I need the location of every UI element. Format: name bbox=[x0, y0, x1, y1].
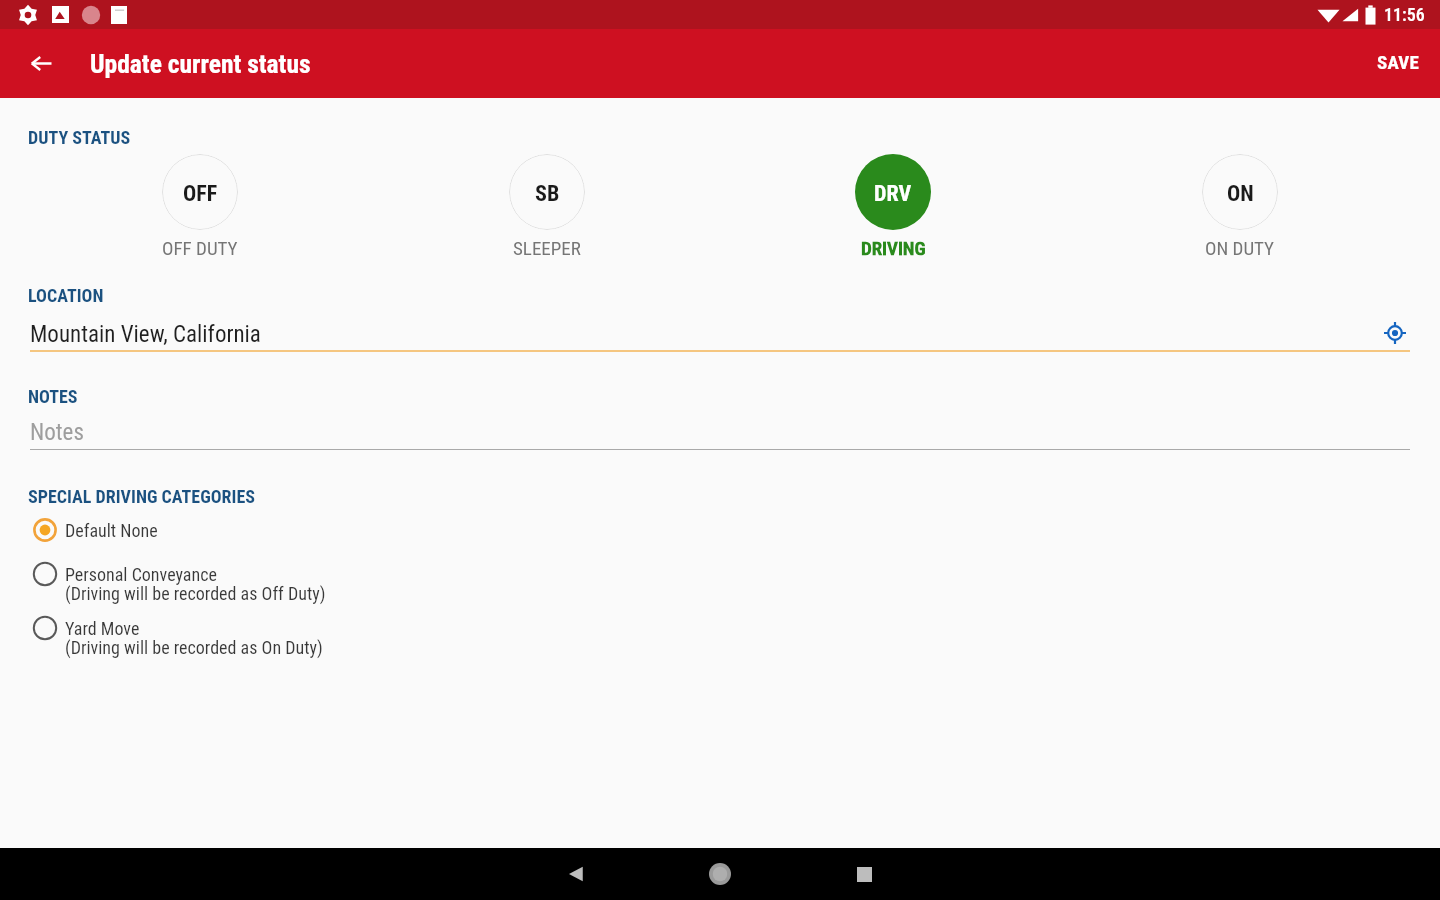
staticText: Mountain View, California bbox=[30, 321, 261, 348]
staticText: Yard Move bbox=[65, 618, 140, 639]
staticText: 11:56 bbox=[1384, 4, 1425, 25]
staticText: OFF DUTY bbox=[162, 237, 238, 259]
staticText: SAVE bbox=[1377, 51, 1420, 73]
button[interactable]: Home bbox=[696, 850, 744, 898]
staticText: SPECIAL DRIVING CATEGORIES bbox=[28, 486, 255, 507]
button[interactable]: OFF bbox=[140, 154, 260, 259]
staticText: DRV bbox=[874, 181, 912, 207]
button[interactable]: SB bbox=[487, 154, 607, 259]
staticText: NOTES bbox=[28, 386, 78, 407]
staticText: ON bbox=[1227, 181, 1254, 207]
staticText: ON DUTY bbox=[1205, 237, 1275, 259]
button[interactable]: Default None bbox=[0, 515, 1440, 545]
button[interactable]: Recent apps bbox=[840, 850, 888, 898]
staticText: DRIVING bbox=[861, 237, 926, 259]
button[interactable]: DRV bbox=[833, 154, 953, 259]
staticText: Notes bbox=[30, 419, 84, 446]
staticText: (Driving will be recorded as On Duty) bbox=[65, 637, 323, 658]
staticText: (Driving will be recorded as Off Duty) bbox=[65, 583, 326, 604]
staticText: SLEEPER bbox=[513, 237, 581, 259]
staticText: SB bbox=[535, 181, 560, 207]
button[interactable]: Yard Move bbox=[0, 613, 1440, 655]
button[interactable]: ON bbox=[1180, 154, 1300, 259]
staticText: DUTY STATUS bbox=[28, 127, 131, 148]
button[interactable]: Back bbox=[17, 39, 66, 88]
button[interactable]: Personal Conveyance bbox=[0, 559, 1440, 601]
staticText: Default None bbox=[65, 520, 158, 541]
staticText: Update current status bbox=[90, 49, 311, 79]
staticText: LOCATION bbox=[28, 285, 104, 306]
staticText: Personal Conveyance bbox=[65, 564, 217, 585]
button[interactable]: SAVE bbox=[1365, 41, 1432, 83]
staticText: OFF bbox=[183, 181, 218, 207]
button[interactable]: Back bbox=[552, 850, 600, 898]
button[interactable]: Use my location bbox=[1380, 318, 1410, 348]
